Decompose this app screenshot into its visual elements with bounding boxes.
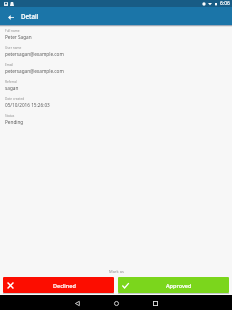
staticText: Peter Sagan: [5, 34, 32, 40]
staticText: Date created: [5, 97, 25, 101]
staticText: 05/10/2016 15:26:03: [5, 102, 50, 108]
staticText: Full name: [5, 29, 20, 33]
staticText: Mark as: [109, 269, 124, 274]
staticText: Status: [5, 114, 15, 118]
staticText: Detail: [21, 12, 39, 20]
staticText: Declined: [53, 282, 76, 289]
button[interactable]: Back: [4, 10, 18, 25]
staticText: Approved: [166, 282, 192, 289]
staticText: sagan: [5, 85, 19, 91]
staticText: Pending: [5, 119, 24, 125]
button[interactable]: Home: [110, 297, 122, 309]
button[interactable]: Declined: [3, 277, 114, 293]
staticText: 6:06: [220, 0, 230, 7]
staticText: Email: [5, 63, 14, 67]
staticText: User name: [5, 46, 22, 50]
staticText: petersagan@example.com: [5, 68, 64, 74]
button[interactable]: Approved: [118, 277, 229, 293]
staticText: petersagan@example.com: [5, 51, 64, 57]
button[interactable]: Recents: [149, 297, 161, 309]
staticText: Referral: [5, 80, 17, 84]
button[interactable]: Back: [71, 297, 83, 309]
